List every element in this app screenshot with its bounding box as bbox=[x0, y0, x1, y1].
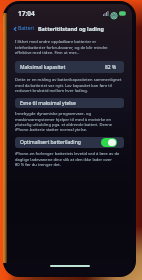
button[interactable]: Optimalisert batterilading bbox=[15, 137, 124, 148]
staticText: 82 % bbox=[105, 64, 117, 71]
button[interactable]: Maksimal kapasitet bbox=[15, 61, 124, 73]
staticText: Innebygde dynamiske programvare- og mask… bbox=[15, 111, 113, 132]
staticText: Dette er en måling av batterikapasiteten… bbox=[15, 77, 122, 93]
button[interactable]: Batteri bbox=[13, 25, 34, 32]
staticText: 17:04 bbox=[18, 9, 35, 18]
staticText: I likhet med andre oppladbare batterier … bbox=[15, 39, 108, 55]
button[interactable]: Evne til maksimal ytelse bbox=[15, 98, 124, 108]
staticText: Evne til maksimal ytelse bbox=[20, 100, 76, 107]
staticText: iPhone-en forlenger batteriets levetid v… bbox=[15, 151, 120, 167]
button[interactable]: Optimalisert batterilading bbox=[101, 138, 117, 147]
staticText: Batteri bbox=[18, 25, 34, 32]
staticText: Optimalisert batterilading bbox=[20, 139, 81, 146]
staticText: Batteritilstand og lading bbox=[38, 25, 104, 32]
staticText: Maksimal kapasitet bbox=[20, 64, 66, 71]
